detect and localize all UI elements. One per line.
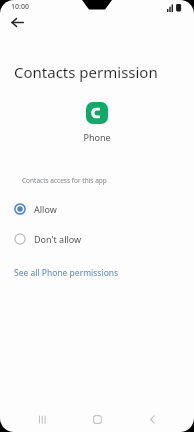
button[interactable]: Back <box>139 406 165 432</box>
button[interactable]: Don't allow <box>0 224 194 254</box>
staticText: See all Phone permissions <box>14 267 119 279</box>
staticText: Phone <box>0 131 194 143</box>
staticText: Contacts access for this app <box>22 176 107 185</box>
button[interactable]: Home <box>84 406 110 432</box>
staticText: Don't allow <box>34 233 82 245</box>
button[interactable]: Recent apps <box>29 406 55 432</box>
staticText: Allow <box>34 203 57 215</box>
button[interactable]: See all Phone permissions <box>0 263 194 283</box>
staticText: Contacts permission <box>14 62 158 82</box>
button[interactable]: Back <box>5 10 29 34</box>
button[interactable]: Allow <box>0 194 194 224</box>
staticText: 10:00 <box>11 2 29 12</box>
